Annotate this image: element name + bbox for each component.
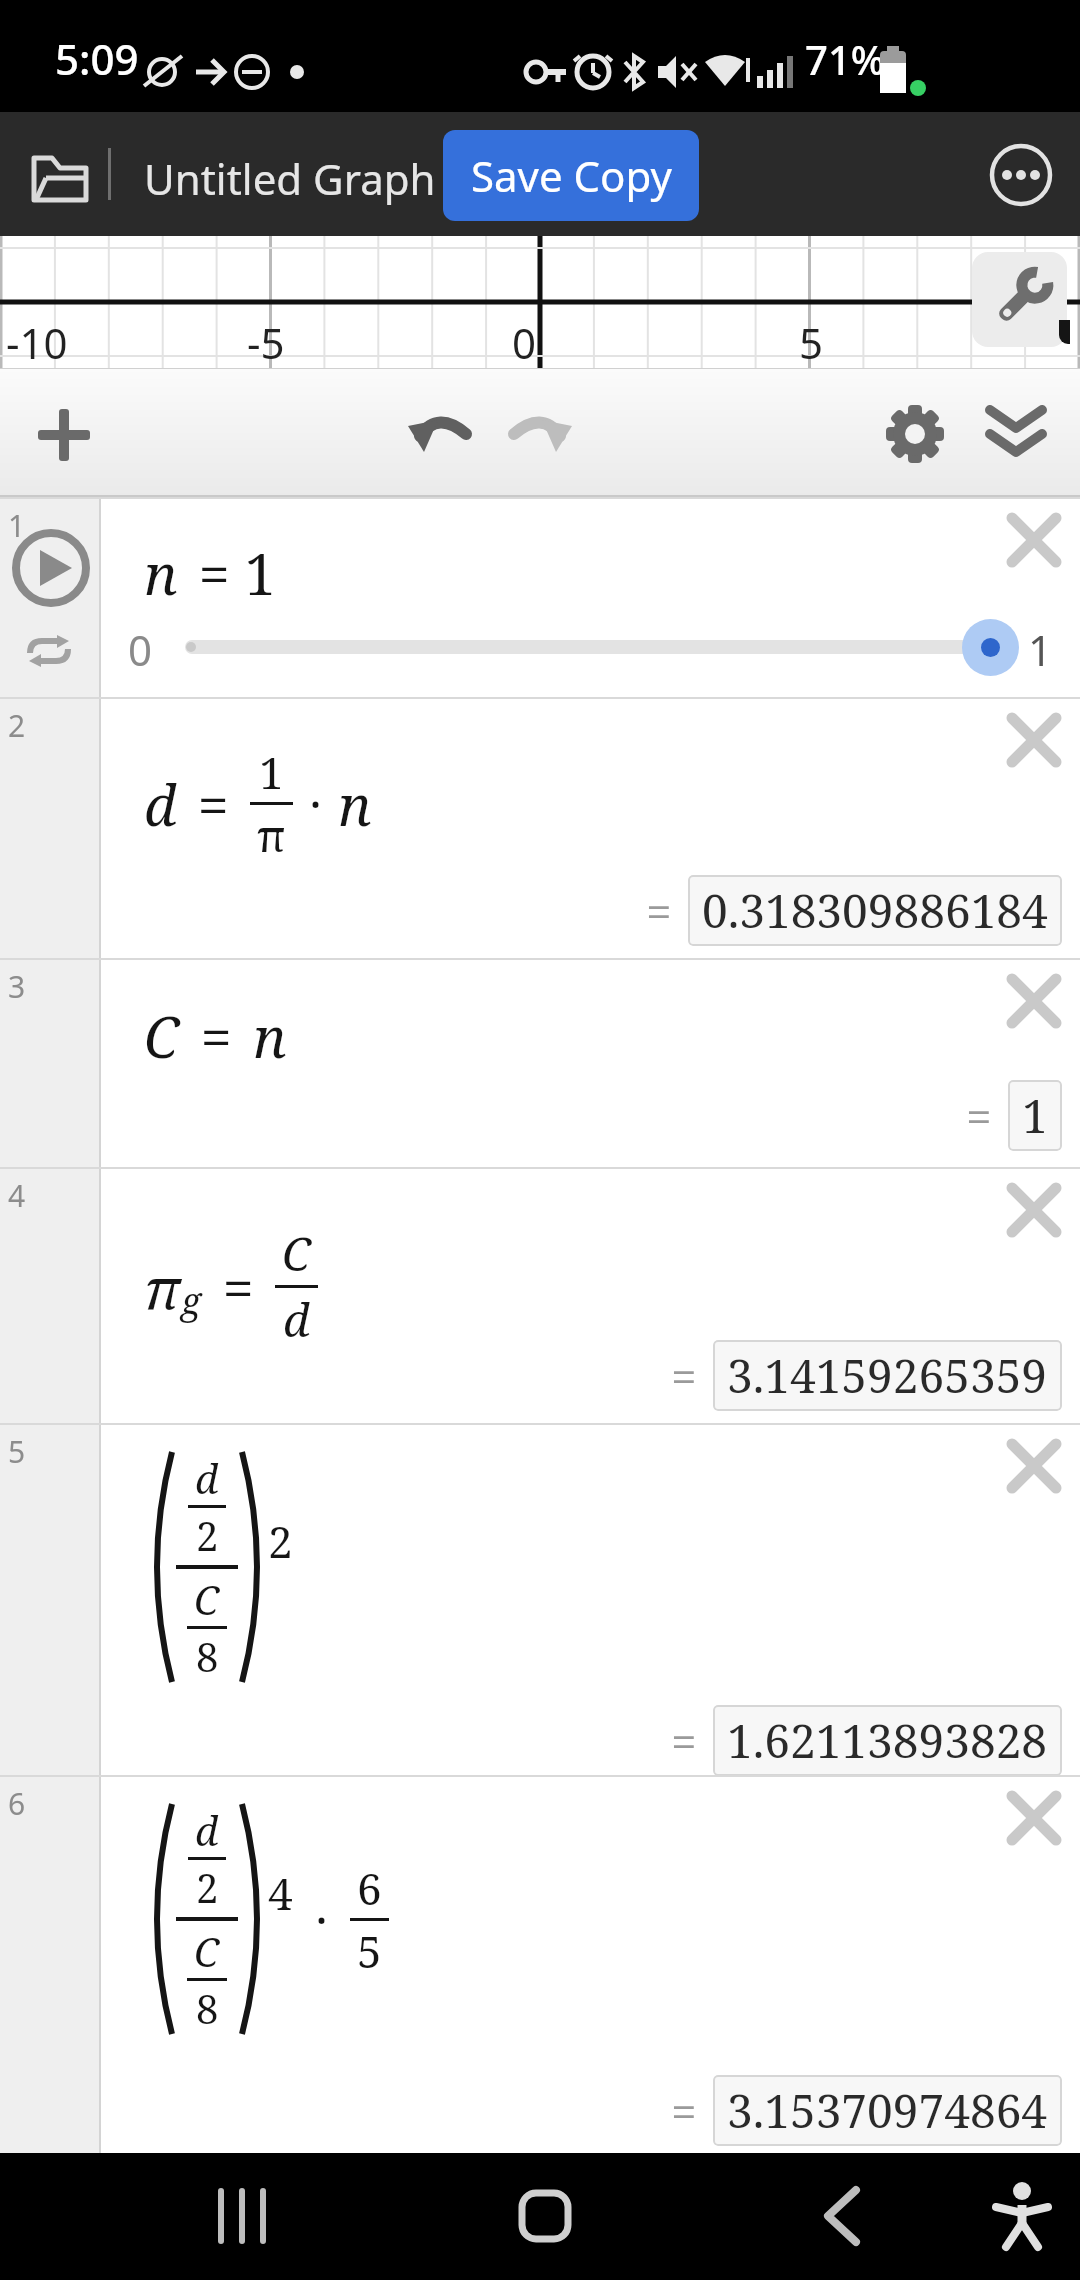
staticText: 0 [128,621,153,678]
staticText: = [671,1344,697,1407]
button[interactable] [408,406,470,458]
staticText: d [283,1288,310,1351]
staticText: n [253,998,287,1074]
staticText: 3 [8,966,26,1007]
staticText: 1 [8,505,26,546]
button[interactable] [1010,977,1058,1025]
staticText: 5 [799,314,824,371]
staticText: 1 [1022,1084,1048,1147]
button[interactable] [30,144,90,204]
staticText: 6 [357,1858,382,1918]
staticText: 0.318309886184 [702,879,1048,942]
staticText: Save Copy [471,147,672,204]
button[interactable] [218,2188,268,2244]
button[interactable] [28,635,70,667]
button[interactable]: 0.318309886184 [688,875,1062,946]
staticText: g [181,1276,202,1325]
staticText: 1.62113893828 [727,1709,1048,1772]
staticText: 4 [8,1175,26,1216]
staticText: · [303,1887,340,1952]
staticText: 8 [196,1629,219,1683]
staticText: = [966,1084,992,1147]
staticText: n [144,535,178,611]
staticText: -5 [247,314,285,371]
staticText: = [186,998,247,1074]
staticText: = [646,879,672,942]
button[interactable]: 3.15370974864 [713,2075,1062,2146]
staticText: · [297,771,334,836]
button[interactable] [972,252,1067,347]
button[interactable] [510,406,572,458]
button[interactable]: 1 [1008,1080,1062,1151]
button[interactable] [822,2188,862,2244]
staticText: d [195,1451,219,1505]
staticText: 6 [8,1783,26,1824]
staticText: π [257,805,286,865]
staticText: 2 [196,1508,219,1562]
staticText: 0 [512,314,537,371]
staticText: 8 [196,1981,219,2035]
staticText: 3.14159265359 [727,1344,1048,1407]
button[interactable] [990,144,1052,206]
staticText: 2 [196,1860,219,1914]
staticText: C [194,1572,220,1626]
staticText: = [208,1249,269,1325]
staticText: 71% [805,32,885,86]
staticText: 4 [268,1863,293,1923]
staticText: d [144,766,177,842]
staticText: Untitled Graph [144,150,436,207]
staticText: d [195,1803,219,1857]
button[interactable] [38,409,90,461]
button[interactable] [1010,716,1058,764]
staticText: 3.15370974864 [727,2079,1048,2142]
staticText: 2 [268,1511,293,1571]
staticText: 5 [357,1921,382,1981]
staticText: 1 [259,742,284,802]
button[interactable] [962,619,1019,676]
staticText: C [144,998,180,1074]
button[interactable] [519,2190,571,2242]
button[interactable] [886,405,944,463]
button[interactable] [988,408,1044,456]
button[interactable]: 1.62113893828 [713,1705,1062,1776]
button[interactable]: Save Copy [443,130,699,221]
button[interactable]: 3.14159265359 [713,1340,1062,1411]
staticText: 5 [8,1431,26,1472]
staticText: C [194,1924,220,1978]
button[interactable] [992,2183,1052,2249]
staticText: = [183,766,244,842]
button[interactable] [12,529,90,607]
staticText: = 1 [184,535,276,611]
staticText: = [671,1709,697,1772]
staticText: 2 [8,705,26,746]
button[interactable] [1010,1794,1058,1842]
staticText: n [338,766,372,842]
staticText: -10 [6,314,68,371]
staticText: C [282,1222,311,1285]
button[interactable] [1010,1186,1058,1234]
staticText: π [144,1249,181,1325]
staticText: 1 [1028,621,1053,678]
button[interactable] [1010,516,1058,564]
staticText: = [671,2079,697,2142]
button[interactable] [1010,1442,1058,1490]
staticText: 5:09 [55,30,139,87]
